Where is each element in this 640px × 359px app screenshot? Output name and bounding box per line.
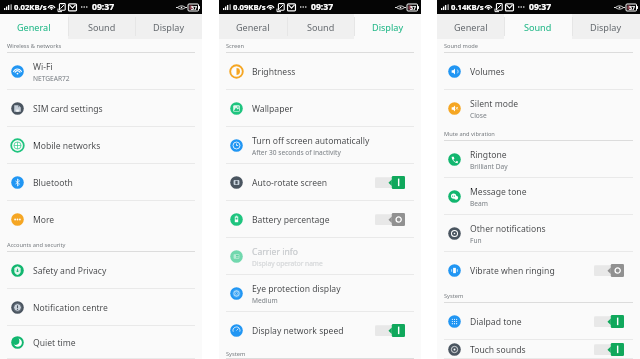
staticText: Notification centre (33, 302, 108, 314)
staticText: Mute and vibration (444, 130, 495, 138)
button[interactable]: Toggle off (375, 213, 405, 226)
staticText: Mobile networks (33, 140, 101, 152)
button[interactable]: Sound (504, 14, 572, 39)
staticText: Brilliant Day (470, 162, 508, 171)
button[interactable]: Notification centre (0, 289, 202, 326)
staticText: Volumes (470, 66, 505, 78)
staticText: Auto-rotate screen (252, 177, 328, 189)
button[interactable]: Wallpaper (219, 90, 421, 127)
staticText: Medium (252, 296, 278, 305)
other: Eye care (176, 5, 187, 10)
button[interactable]: SIM card settings (0, 90, 202, 127)
staticText: 37 (191, 4, 197, 11)
staticText: Sound (524, 21, 552, 33)
staticText: System (444, 292, 464, 300)
button[interactable]: Display (572, 14, 640, 39)
staticText: Brightness (252, 66, 296, 78)
staticText: Turn off screen automatically (252, 135, 370, 147)
button[interactable]: Display network speed (219, 312, 421, 349)
button[interactable]: Vibrate when ringing (437, 252, 640, 289)
staticText: Wireless & networks (7, 42, 62, 50)
staticText: Wi-Fi (33, 61, 53, 73)
button[interactable]: Toggle on (594, 315, 624, 328)
staticText: Bluetooth (33, 177, 73, 189)
button[interactable]: Sound (287, 14, 354, 39)
staticText: NETGEAR72 (33, 74, 70, 83)
staticText: Display (372, 21, 404, 33)
button[interactable]: Silent mode (437, 90, 640, 127)
button[interactable]: Display (135, 14, 202, 39)
staticText: 0.02KB/s (14, 2, 47, 12)
button[interactable]: Battery percentage (219, 201, 421, 238)
staticText: Eye protection display (252, 283, 341, 295)
button[interactable]: Message tone (437, 178, 640, 215)
other: Eye care (614, 5, 625, 10)
staticText: 37 (410, 4, 416, 11)
staticText: After 30 seconds of inactivity (252, 148, 341, 157)
staticText: 09:37 (92, 1, 115, 13)
staticText: Safety and Privacy (33, 265, 107, 277)
other: Battery (626, 4, 638, 11)
button[interactable]: Quiet time (0, 326, 202, 359)
staticText: 0.14KB/s (451, 2, 484, 12)
button[interactable]: Auto-rotate screen (219, 164, 421, 201)
button[interactable]: Mobile networks (0, 127, 202, 164)
other: Eye care (395, 5, 406, 10)
button[interactable]: Other notifications (437, 215, 640, 252)
button[interactable]: Brightness (219, 53, 421, 90)
staticText: Carrier info (252, 246, 298, 258)
staticText: Dialpad tone (470, 316, 522, 328)
staticText: Sound mode (444, 42, 479, 50)
button[interactable]: General (219, 14, 287, 39)
button[interactable]: Toggle on (594, 343, 624, 356)
staticText: General (17, 21, 51, 33)
button[interactable]: Display (354, 14, 421, 39)
button[interactable]: Carrier info (219, 238, 421, 275)
staticText: Screen (226, 42, 245, 50)
staticText: Wallpaper (252, 103, 293, 115)
staticText: Fun (470, 236, 482, 245)
staticText: More (33, 214, 55, 226)
staticText: Touch sounds (470, 344, 526, 356)
staticText: 09:37 (529, 1, 552, 13)
staticText: Sound (88, 21, 116, 33)
staticText: Battery percentage (252, 214, 330, 226)
other: Battery (407, 4, 419, 11)
staticText: Accounts and security (7, 241, 66, 249)
staticText: Display (590, 21, 622, 33)
button[interactable]: Toggle off (594, 264, 624, 277)
staticText: Ringtone (470, 149, 507, 161)
button[interactable]: Wi-Fi (0, 53, 202, 90)
button[interactable]: Safety and Privacy (0, 252, 202, 289)
staticText: Message tone (470, 186, 527, 198)
staticText: Display operator name (252, 259, 323, 268)
staticText: Quiet time (33, 337, 76, 349)
button[interactable]: Bluetooth (0, 164, 202, 201)
staticText: System (226, 350, 246, 358)
staticText: Beam (470, 199, 488, 208)
button[interactable]: Dialpad tone (437, 303, 640, 340)
other: Battery (188, 4, 200, 11)
staticText: 0.09KB/s (233, 2, 266, 12)
staticText: Other notifications (470, 223, 546, 235)
staticText: 37 (629, 4, 635, 11)
staticText: Sound (307, 21, 335, 33)
button[interactable]: Turn off screen automatically (219, 127, 421, 164)
button[interactable]: Sound (68, 14, 135, 39)
button[interactable]: Volumes (437, 53, 640, 90)
staticText: Close (470, 111, 487, 120)
staticText: 09:37 (311, 1, 334, 13)
staticText: Display network speed (252, 325, 344, 337)
button[interactable]: Toggle on (375, 324, 405, 337)
button[interactable]: Toggle on (375, 176, 405, 189)
staticText: Display (153, 21, 185, 33)
button[interactable]: General (0, 14, 68, 39)
staticText: Vibrate when ringing (470, 265, 555, 277)
button[interactable]: Touch sounds (437, 340, 640, 359)
button[interactable]: General (437, 14, 504, 39)
staticText: SIM card settings (33, 103, 103, 115)
button[interactable]: More (0, 201, 202, 238)
staticText: Silent mode (470, 98, 519, 110)
button[interactable]: Eye protection display (219, 275, 421, 312)
button[interactable]: Ringtone (437, 141, 640, 178)
